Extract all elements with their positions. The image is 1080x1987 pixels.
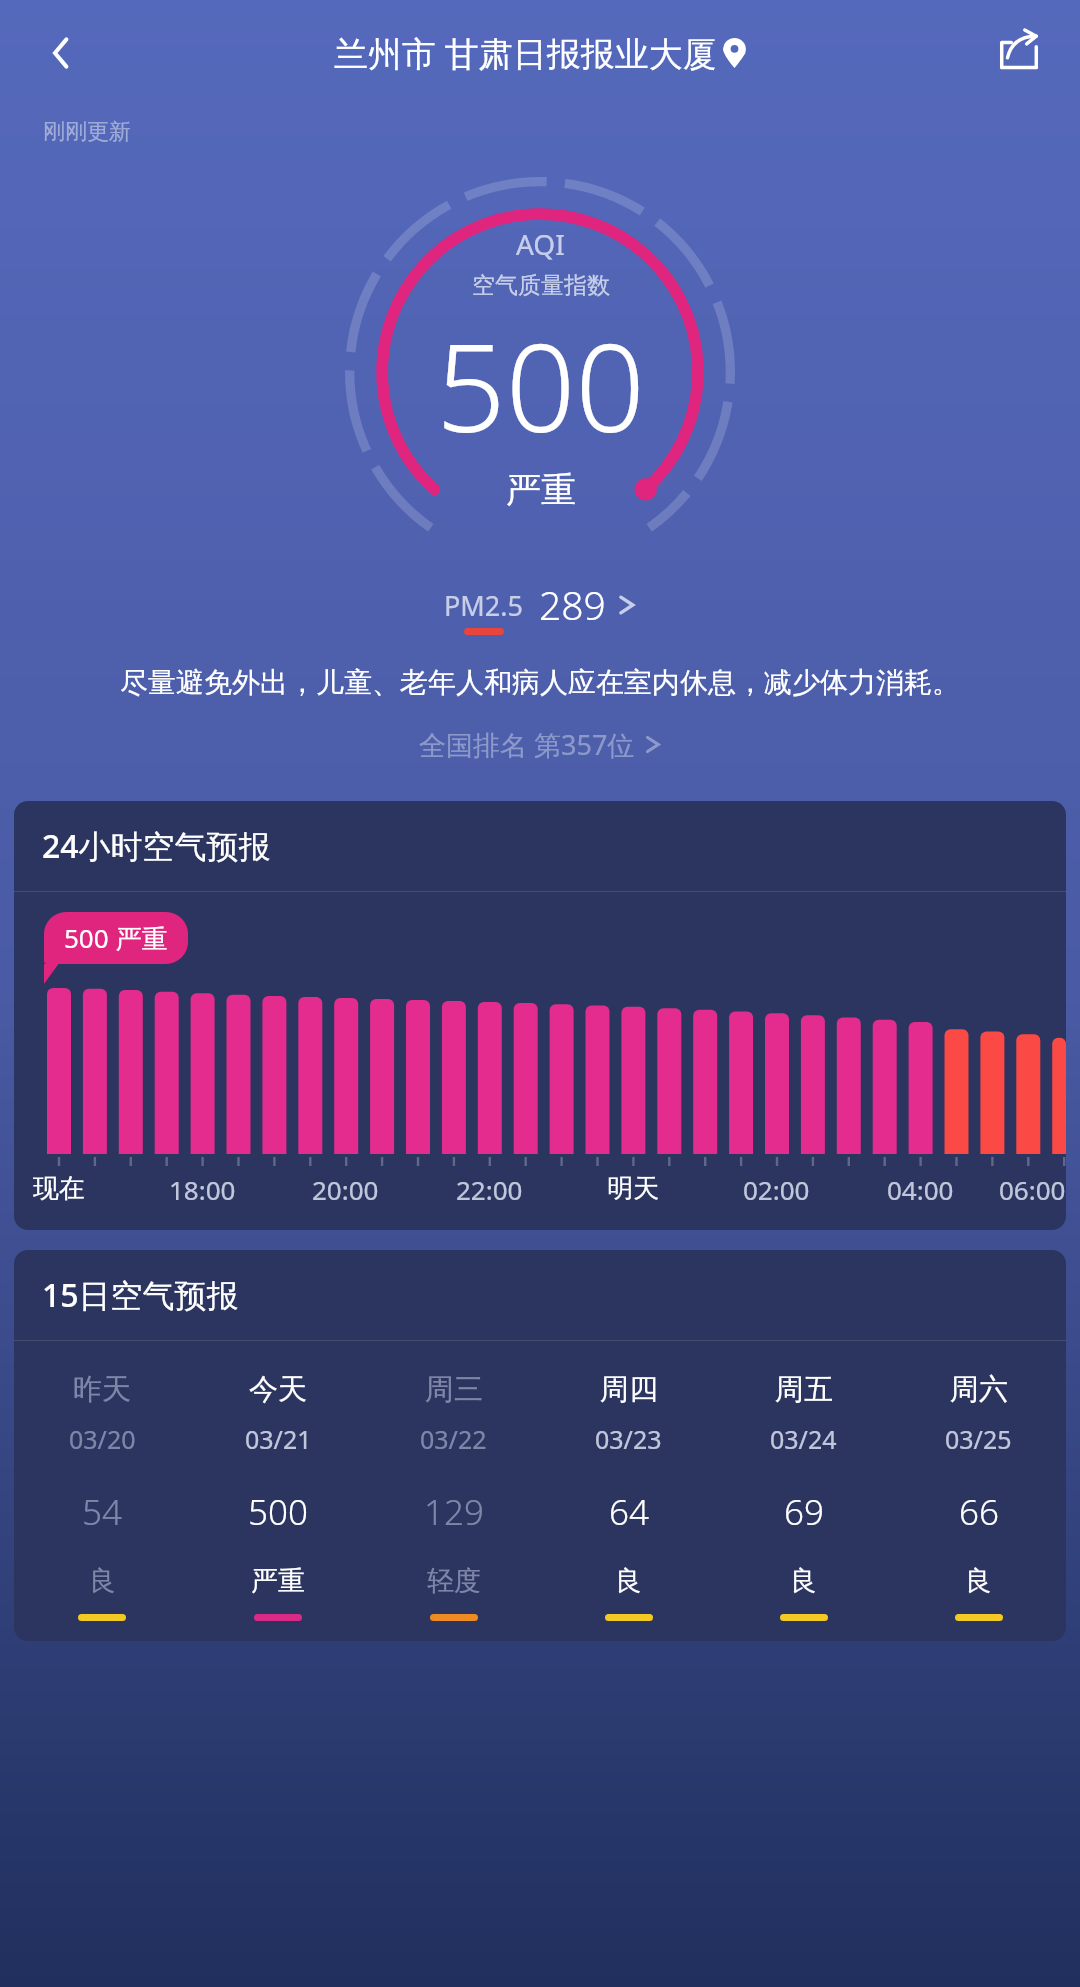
staticText: 18:00	[169, 1172, 236, 1207]
staticText: 明天	[607, 1172, 659, 1205]
staticText: 周三	[425, 1371, 483, 1408]
staticText: 03/23	[595, 1422, 662, 1456]
staticText: 500	[436, 302, 645, 468]
staticText: 289	[539, 578, 606, 631]
staticText: 良	[615, 1564, 642, 1598]
staticText: 54	[82, 1488, 122, 1536]
staticText: 尽量避免外出，儿童、老年人和病人应在室内休息，减少体力消耗。	[50, 665, 1030, 700]
button[interactable]: Back	[18, 13, 98, 93]
staticText: 03/25	[945, 1422, 1012, 1456]
staticText: 02:00	[743, 1172, 810, 1207]
button[interactable]: 周五	[716, 1371, 891, 1621]
staticText: 06:00	[999, 1172, 1066, 1207]
staticText: 03/20	[69, 1422, 136, 1456]
button[interactable]: 昨天	[14, 1371, 190, 1621]
staticText: 昨天	[73, 1371, 131, 1408]
staticText: 良	[965, 1564, 992, 1598]
staticText: 500 严重	[64, 920, 168, 956]
staticText: 周五	[775, 1371, 833, 1408]
button[interactable]: 周三	[366, 1371, 541, 1621]
staticText: 129	[424, 1488, 484, 1536]
button[interactable]: 24小时空气预报	[14, 801, 1066, 1230]
staticText: 今天	[249, 1371, 307, 1408]
staticText: 03/22	[420, 1422, 487, 1456]
button[interactable]: 全国排名 第357位	[0, 726, 1080, 763]
staticText: 现在	[33, 1172, 85, 1205]
staticText: 良	[89, 1564, 116, 1598]
staticText: 周六	[950, 1371, 1008, 1408]
staticText: 69	[784, 1488, 824, 1536]
button[interactable]: PM2.5	[0, 584, 1080, 637]
staticText: 64	[609, 1488, 649, 1536]
staticText: PM2.5	[444, 587, 523, 624]
button[interactable]: 今天	[190, 1371, 366, 1621]
staticText: 15日空气预报	[42, 1273, 239, 1317]
staticText: 20:00	[312, 1172, 379, 1207]
button[interactable]: 周四	[541, 1371, 716, 1621]
staticText: 严重	[251, 1564, 305, 1598]
staticText: 22:00	[456, 1172, 523, 1207]
staticText: 66	[959, 1488, 999, 1536]
staticText: 500	[248, 1488, 308, 1536]
staticText: 空气质量指数	[472, 271, 610, 300]
staticText: 03/21	[245, 1422, 312, 1456]
staticText: 严重	[506, 468, 576, 512]
staticText: 24小时空气预报	[42, 824, 271, 868]
staticText: 04:00	[887, 1172, 954, 1207]
staticText: 全国排名 第357位	[419, 726, 635, 763]
staticText: 良	[790, 1564, 817, 1598]
staticText: 轻度	[427, 1564, 481, 1598]
staticText: AQI	[516, 225, 565, 263]
button[interactable]: 周六	[891, 1371, 1066, 1621]
staticText: 兰州市 甘肃日报报业大厦	[334, 30, 717, 76]
staticText: 周四	[600, 1371, 658, 1408]
staticText: 03/24	[770, 1422, 837, 1456]
staticText: 刚刚更新	[43, 118, 131, 146]
button[interactable]: Share	[978, 12, 1060, 94]
